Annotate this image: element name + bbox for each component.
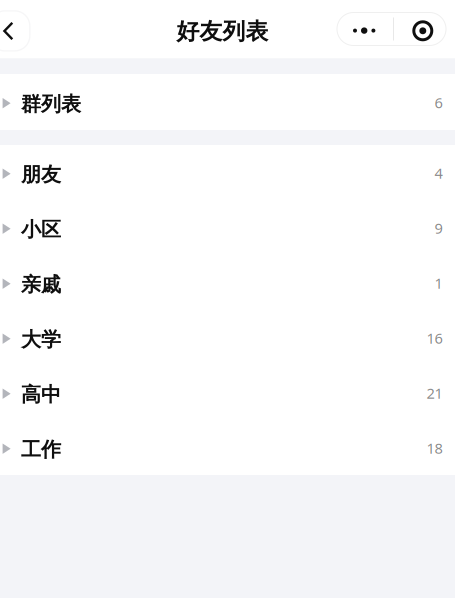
staticText: 21: [426, 383, 442, 403]
staticText: 16: [426, 328, 442, 348]
staticText: 4: [434, 163, 442, 183]
staticText: 亲戚: [21, 272, 61, 297]
button[interactable]: 群列表: [0, 74, 455, 130]
button[interactable]: Close: [394, 12, 446, 45]
button[interactable]: More: [337, 12, 393, 45]
button[interactable]: 工作: [0, 420, 455, 475]
staticText: 18: [426, 438, 442, 458]
staticText: 群列表: [21, 92, 81, 116]
staticText: 大学: [21, 327, 61, 352]
button[interactable]: 小区: [0, 200, 455, 255]
staticText: 6: [434, 93, 442, 112]
button[interactable]: 亲戚: [0, 255, 455, 310]
button[interactable]: 朋友: [0, 145, 455, 200]
staticText: 工作: [21, 437, 61, 462]
staticText: 朋友: [21, 162, 61, 187]
staticText: 小区: [21, 217, 61, 242]
button[interactable]: 高中: [0, 365, 455, 420]
staticText: 高中: [21, 382, 61, 407]
button[interactable]: Back: [0, 5, 44, 53]
button[interactable]: 大学: [0, 310, 455, 365]
staticText: 9: [434, 218, 442, 238]
staticText: 好友列表: [176, 17, 268, 45]
staticText: 1: [434, 273, 442, 293]
